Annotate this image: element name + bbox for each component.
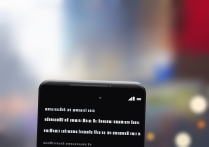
button[interactable]: Phone screen notification — [38, 80, 146, 147]
